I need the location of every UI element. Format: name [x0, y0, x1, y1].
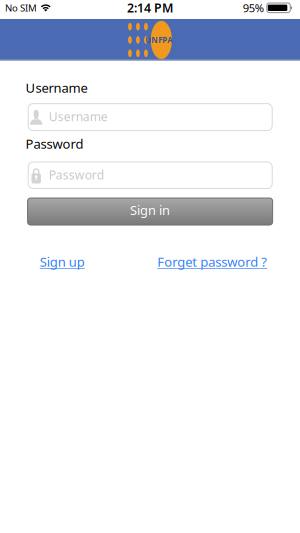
staticText: Forget password ? [157, 253, 267, 271]
staticText: Sign in [130, 201, 170, 219]
staticText: Username [49, 108, 108, 125]
staticText: Sign up [40, 253, 85, 271]
staticText: Password [26, 135, 84, 152]
staticText: UNFPA [145, 34, 173, 45]
staticText: Username [26, 79, 88, 96]
staticText: No SIM [5, 1, 37, 14]
button[interactable]: Sign up [40, 253, 85, 271]
button[interactable]: Forget password ? [157, 253, 267, 271]
staticText: 2:14 PM [127, 0, 173, 16]
button[interactable]: Sign in [28, 198, 273, 225]
staticText: 95% [243, 0, 264, 15]
staticText: Password [49, 166, 104, 183]
